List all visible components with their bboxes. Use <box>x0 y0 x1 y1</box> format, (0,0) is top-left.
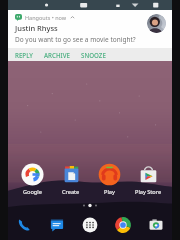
button[interactable]: Apps <box>79 214 101 236</box>
button[interactable]: Contact photo <box>147 14 166 33</box>
button[interactable]: Messages <box>46 214 68 236</box>
button[interactable]: ARCHIVE <box>43 49 71 61</box>
staticText: Hangouts • now <box>25 14 67 21</box>
button[interactable]: REPLY <box>14 49 34 61</box>
button[interactable]: Play Store <box>129 162 167 197</box>
button[interactable]: Camera <box>145 214 167 236</box>
button[interactable]: Hangouts • now <box>8 10 172 48</box>
staticText: SNOOZE <box>81 51 106 59</box>
button[interactable]: Play <box>90 162 128 197</box>
button[interactable]: Google <box>13 162 51 197</box>
button[interactable]: Create <box>52 162 90 197</box>
staticText: ARCHIVE <box>44 51 70 59</box>
staticText: Play Store <box>135 188 162 196</box>
staticText: REPLY <box>15 51 33 59</box>
staticText: Create <box>62 188 80 196</box>
staticText: Do you want to go see a movie tonight? <box>15 35 136 44</box>
staticText: Justin Rhyss <box>15 23 58 33</box>
button[interactable]: Chrome <box>112 214 134 236</box>
staticText: Google <box>23 188 42 196</box>
button[interactable]: SNOOZE <box>80 49 107 61</box>
button[interactable]: Phone <box>13 214 35 236</box>
staticText: Play <box>104 188 115 196</box>
